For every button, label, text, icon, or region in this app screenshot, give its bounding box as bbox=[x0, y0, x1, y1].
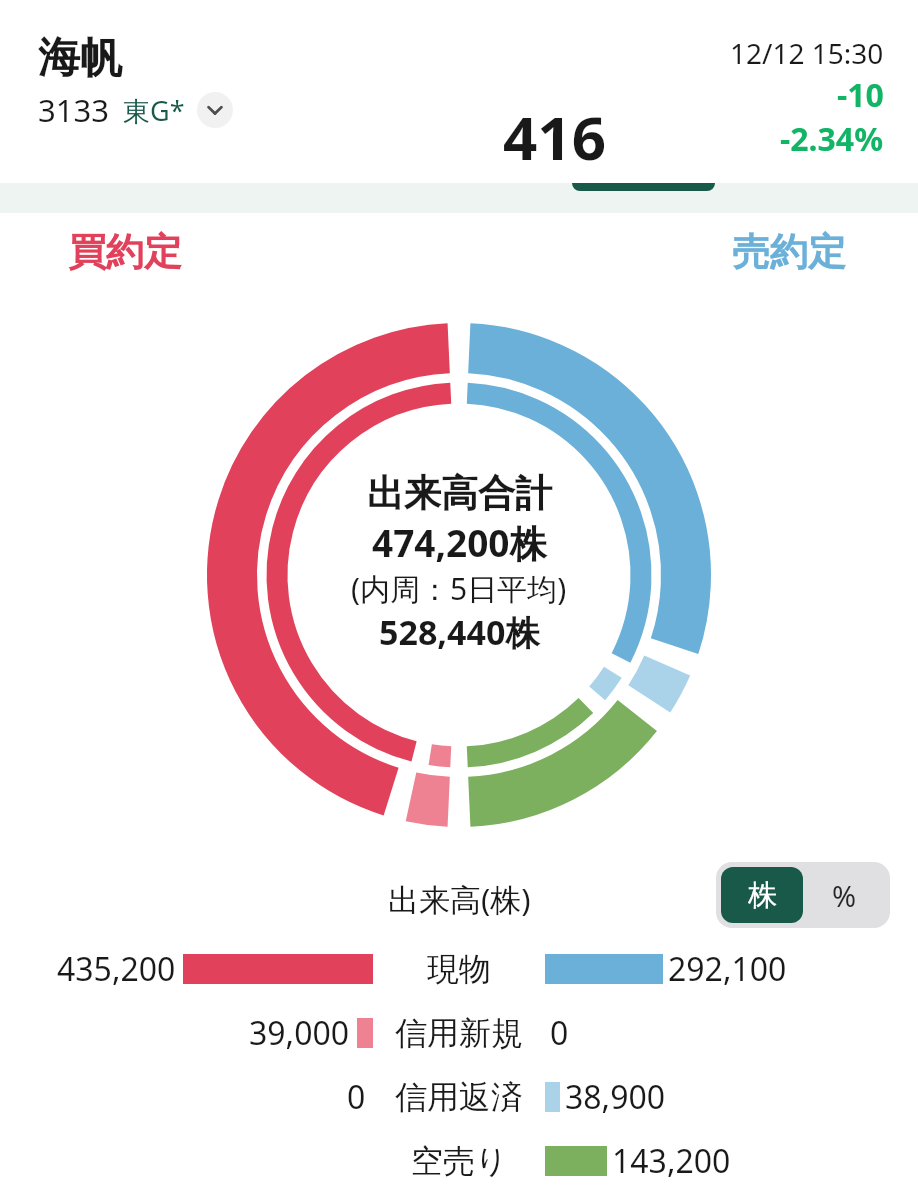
staticText: 12/12 15:30 bbox=[730, 34, 884, 72]
staticText: 出来高合計 bbox=[367, 470, 552, 517]
staticText: 39,000 bbox=[249, 1011, 350, 1055]
staticText: 474,200株 bbox=[372, 517, 547, 568]
staticText: 0 bbox=[347, 1075, 366, 1119]
staticText: 416 bbox=[503, 96, 606, 178]
button[interactable]: 0 bbox=[0, 1073, 918, 1121]
staticText: 3133 bbox=[38, 89, 109, 131]
staticText: 株 bbox=[748, 877, 777, 914]
staticText: (内周：5日平均) bbox=[351, 568, 567, 609]
staticText: 信用新規 bbox=[395, 1013, 523, 1053]
staticText: 空売り bbox=[411, 1141, 508, 1181]
button[interactable]: 空売り bbox=[0, 1137, 918, 1185]
staticText: 292,100 bbox=[668, 947, 787, 991]
staticText: % bbox=[832, 876, 857, 915]
staticText: 出来高(株) bbox=[388, 878, 531, 920]
staticText: 東G* bbox=[123, 92, 185, 129]
staticText: 143,200 bbox=[612, 1139, 731, 1183]
button[interactable]: % bbox=[803, 867, 885, 923]
staticText: 0 bbox=[550, 1011, 569, 1055]
button[interactable]: 株 bbox=[721, 867, 803, 923]
staticText: 528,440株 bbox=[379, 609, 540, 655]
button[interactable]: Volume tab bbox=[572, 183, 715, 191]
staticText: 435,200 bbox=[57, 947, 176, 991]
staticText: -10 bbox=[837, 73, 884, 117]
staticText: 38,900 bbox=[565, 1075, 666, 1119]
staticText: 信用返済 bbox=[395, 1077, 523, 1117]
staticText: 買約定 bbox=[68, 228, 182, 276]
button[interactable]: 435,200 bbox=[0, 945, 918, 993]
staticText: 現物 bbox=[427, 949, 491, 989]
staticText: -2.34% bbox=[780, 117, 884, 161]
staticText: 売約定 bbox=[732, 228, 846, 276]
button[interactable]: Change market bbox=[197, 92, 233, 128]
button[interactable]: 39,000 bbox=[0, 1009, 918, 1057]
staticText: 海帆 bbox=[38, 32, 122, 85]
